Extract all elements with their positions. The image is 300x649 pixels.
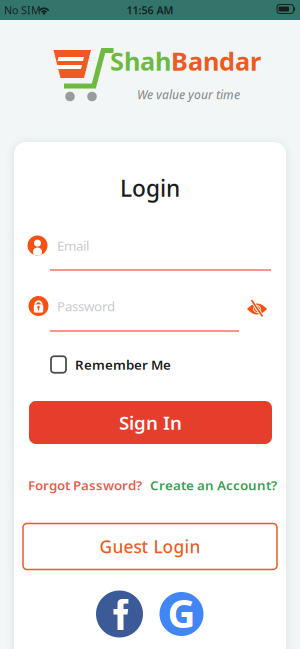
button[interactable]: Sign in with Facebook xyxy=(96,585,143,643)
staticText: Guest Login xyxy=(99,535,200,558)
button[interactable]: Sign in with Google xyxy=(159,586,203,642)
staticText: Shah xyxy=(110,44,171,78)
staticText: We value your time xyxy=(137,86,240,102)
staticText: Sign In xyxy=(119,410,182,435)
staticText: No SIM xyxy=(4,3,41,17)
staticText: Forgot Password? xyxy=(28,476,142,494)
staticText: 11:56 AM xyxy=(126,3,173,17)
staticText: Bandar xyxy=(171,44,261,78)
button[interactable]: Create an Account? xyxy=(147,476,277,494)
button[interactable]: Remember Me xyxy=(51,356,171,373)
staticText: Password xyxy=(57,297,115,315)
button[interactable]: Guest Login xyxy=(23,523,277,569)
staticText: Email xyxy=(57,237,89,254)
button[interactable]: Sign In xyxy=(29,401,272,444)
staticText: Login xyxy=(120,173,180,203)
button[interactable]: Forgot Password? xyxy=(28,476,148,494)
staticText: Remember Me xyxy=(75,356,171,373)
button[interactable]: Show password xyxy=(247,302,267,315)
staticText: G xyxy=(167,587,195,639)
staticText: Create an Account? xyxy=(150,476,277,494)
